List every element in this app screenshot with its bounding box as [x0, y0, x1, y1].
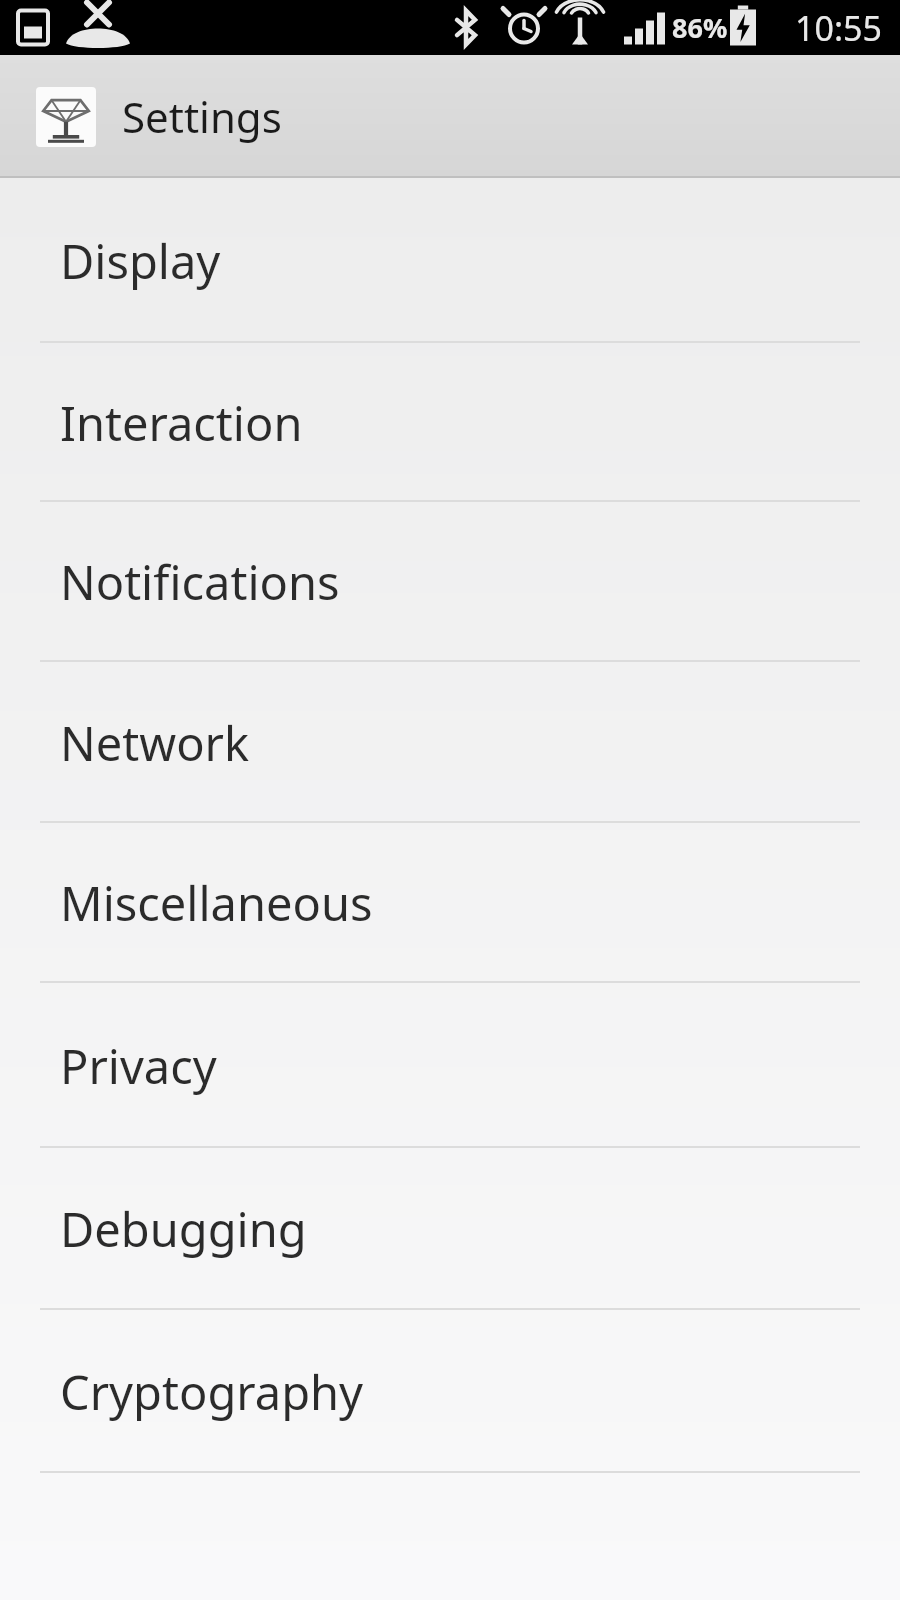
staticText: Network [60, 711, 250, 775]
staticText: 10:55 [795, 5, 882, 51]
staticText: Debugging [60, 1197, 307, 1261]
button[interactable]: App icon [0, 55, 900, 178]
button[interactable]: Network [0, 662, 900, 823]
staticText: Cryptography [60, 1360, 364, 1424]
button[interactable]: Debugging [0, 1148, 900, 1310]
button[interactable]: Miscellaneous [0, 823, 900, 983]
staticText: Miscellaneous [60, 871, 373, 935]
button[interactable]: Display [0, 178, 900, 343]
button[interactable]: Notifications [0, 502, 900, 662]
staticText: 86% [672, 9, 728, 46]
staticText: Privacy [60, 1034, 217, 1098]
staticText: Interaction [60, 391, 303, 455]
button[interactable]: Privacy [0, 983, 900, 1148]
staticText: Display [60, 229, 221, 293]
button[interactable]: Cryptography [0, 1310, 900, 1473]
other: App icon [36, 87, 96, 147]
staticText: Notifications [60, 550, 340, 614]
staticText: Settings [122, 88, 282, 145]
button[interactable]: Interaction [0, 343, 900, 502]
